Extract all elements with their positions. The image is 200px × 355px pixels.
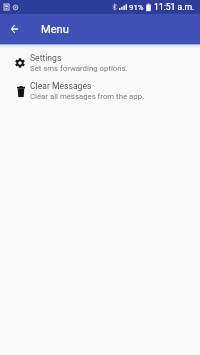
button[interactable]: Settings	[0, 49, 200, 77]
button[interactable]: Navigate up	[0, 14, 28, 44]
staticText: 91%	[129, 3, 144, 12]
staticText: Settings	[30, 53, 62, 63]
staticText: Clear Messages	[30, 81, 92, 91]
button[interactable]: Clear Messages	[0, 77, 200, 105]
staticText: Clear all messages from the app.	[30, 92, 145, 101]
staticText: 11:51 a.m.	[154, 2, 195, 12]
staticText: Set sms forwarding options.	[30, 64, 128, 73]
staticText: Menu	[41, 23, 69, 36]
